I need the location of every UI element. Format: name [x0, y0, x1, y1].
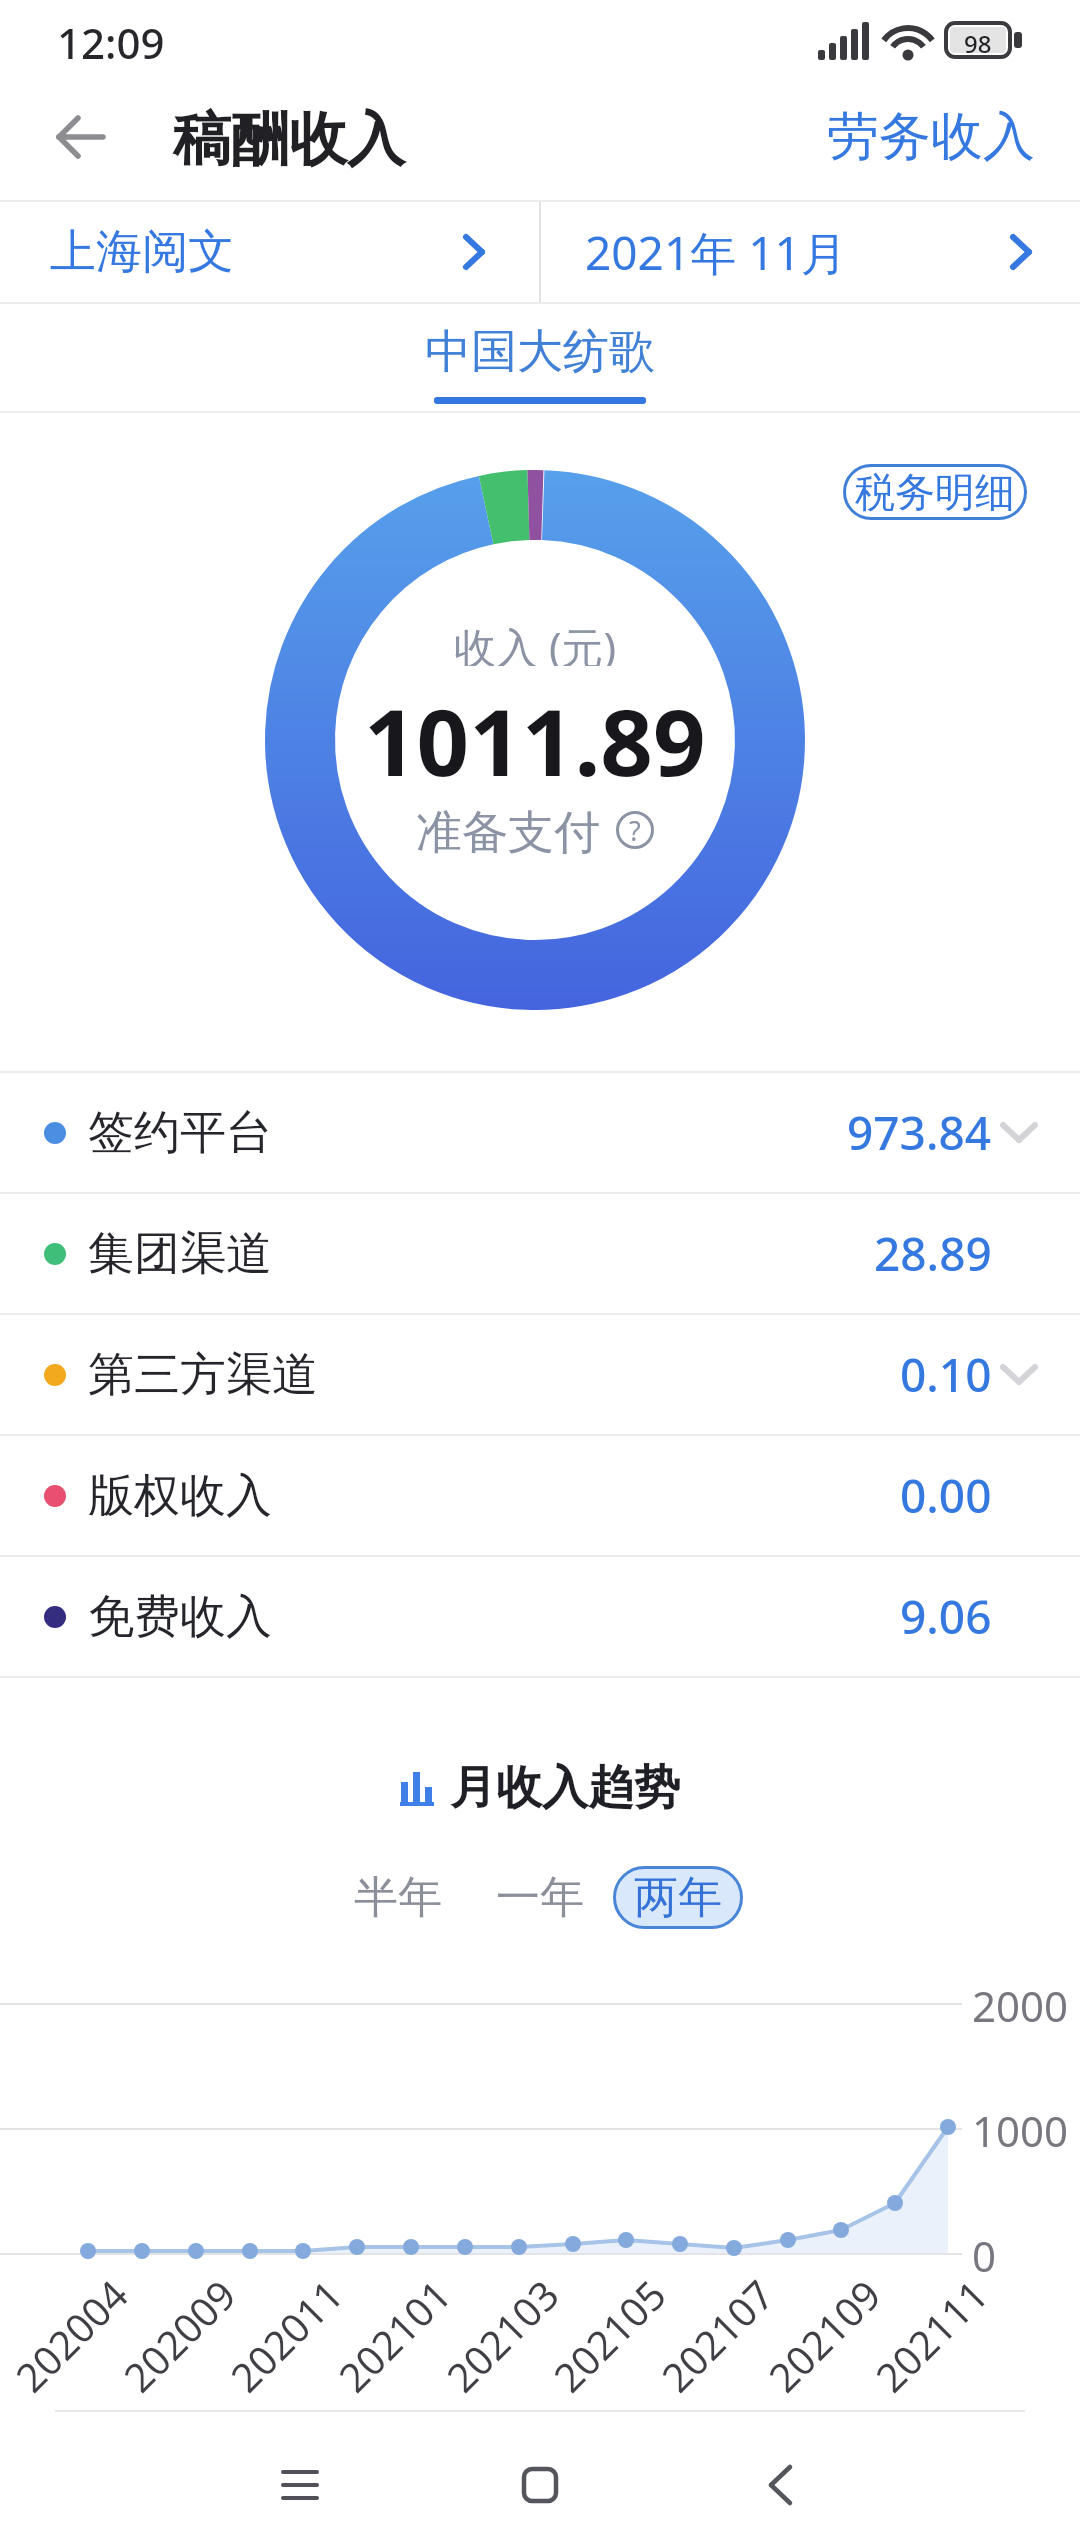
- staticText: 准备支付: [416, 804, 600, 856]
- staticText: 202109: [756, 2267, 892, 2403]
- staticText: 稿酬收入: [173, 103, 405, 176]
- staticText: 0.10: [900, 1343, 992, 1406]
- staticText: 第三方渠道: [88, 1346, 318, 1404]
- staticText: 一年: [496, 1870, 584, 1925]
- staticText: 签约平台: [88, 1104, 272, 1162]
- staticText: 202009: [111, 2267, 247, 2403]
- button[interactable]: 版权收入: [0, 1436, 1080, 1555]
- staticText: 202111: [863, 2267, 999, 2403]
- staticText: 28.89: [874, 1222, 992, 1285]
- button[interactable]: 免费收入: [0, 1557, 1080, 1676]
- button[interactable]: 签约平台: [0, 1073, 1080, 1192]
- staticText: 中国大纺歌: [425, 323, 655, 381]
- button[interactable]: 中国大纺歌: [0, 312, 1080, 392]
- button[interactable]: 两年: [613, 1866, 743, 1929]
- staticText: ?: [629, 812, 641, 849]
- staticText: 劳务收入: [827, 104, 1035, 170]
- staticText: 9.06: [900, 1585, 992, 1648]
- staticText: 0.00: [900, 1464, 992, 1527]
- staticText: 收入 (元): [454, 618, 617, 666]
- staticText: 集团渠道: [88, 1225, 272, 1283]
- staticText: 202105: [541, 2267, 677, 2403]
- button[interactable]: [480, 2440, 600, 2530]
- button[interactable]: 上海阅文: [0, 202, 539, 302]
- staticText: 上海阅文: [50, 223, 234, 281]
- button[interactable]: 第三方渠道: [0, 1315, 1080, 1434]
- staticText: 1000: [972, 2102, 1069, 2159]
- staticText: 973.84: [847, 1101, 992, 1164]
- button[interactable]: 2021年 11月: [541, 202, 1080, 302]
- staticText: 1011.89: [364, 678, 706, 788]
- staticText: 98: [964, 27, 992, 53]
- staticText: 版权收入: [88, 1467, 272, 1525]
- staticText: 202107: [649, 2267, 785, 2403]
- button[interactable]: 税务明细: [843, 464, 1027, 520]
- staticText: 12:09: [57, 14, 165, 71]
- button[interactable]: 劳务收入: [795, 95, 1035, 179]
- staticText: 2021年 11月: [585, 221, 847, 284]
- button[interactable]: 集团渠道: [0, 1194, 1080, 1313]
- staticText: 202004: [3, 2267, 139, 2403]
- button[interactable]: [30, 95, 130, 179]
- staticText: 免费收入: [88, 1588, 272, 1646]
- button[interactable]: 半年: [338, 1866, 458, 1929]
- staticText: 2000: [972, 1977, 1069, 2034]
- staticText: 税务明细: [855, 467, 1015, 517]
- staticText: 202101: [326, 2267, 462, 2403]
- staticText: 月收入趋势: [450, 1759, 680, 1817]
- button[interactable]: 一年: [480, 1866, 600, 1929]
- staticText: 202103: [434, 2267, 570, 2403]
- staticText: 两年: [634, 1870, 722, 1925]
- staticText: 0: [972, 2227, 997, 2284]
- button[interactable]: [720, 2440, 840, 2530]
- button[interactable]: [240, 2440, 360, 2530]
- staticText: 202011: [218, 2267, 354, 2403]
- staticText: 半年: [354, 1870, 442, 1925]
